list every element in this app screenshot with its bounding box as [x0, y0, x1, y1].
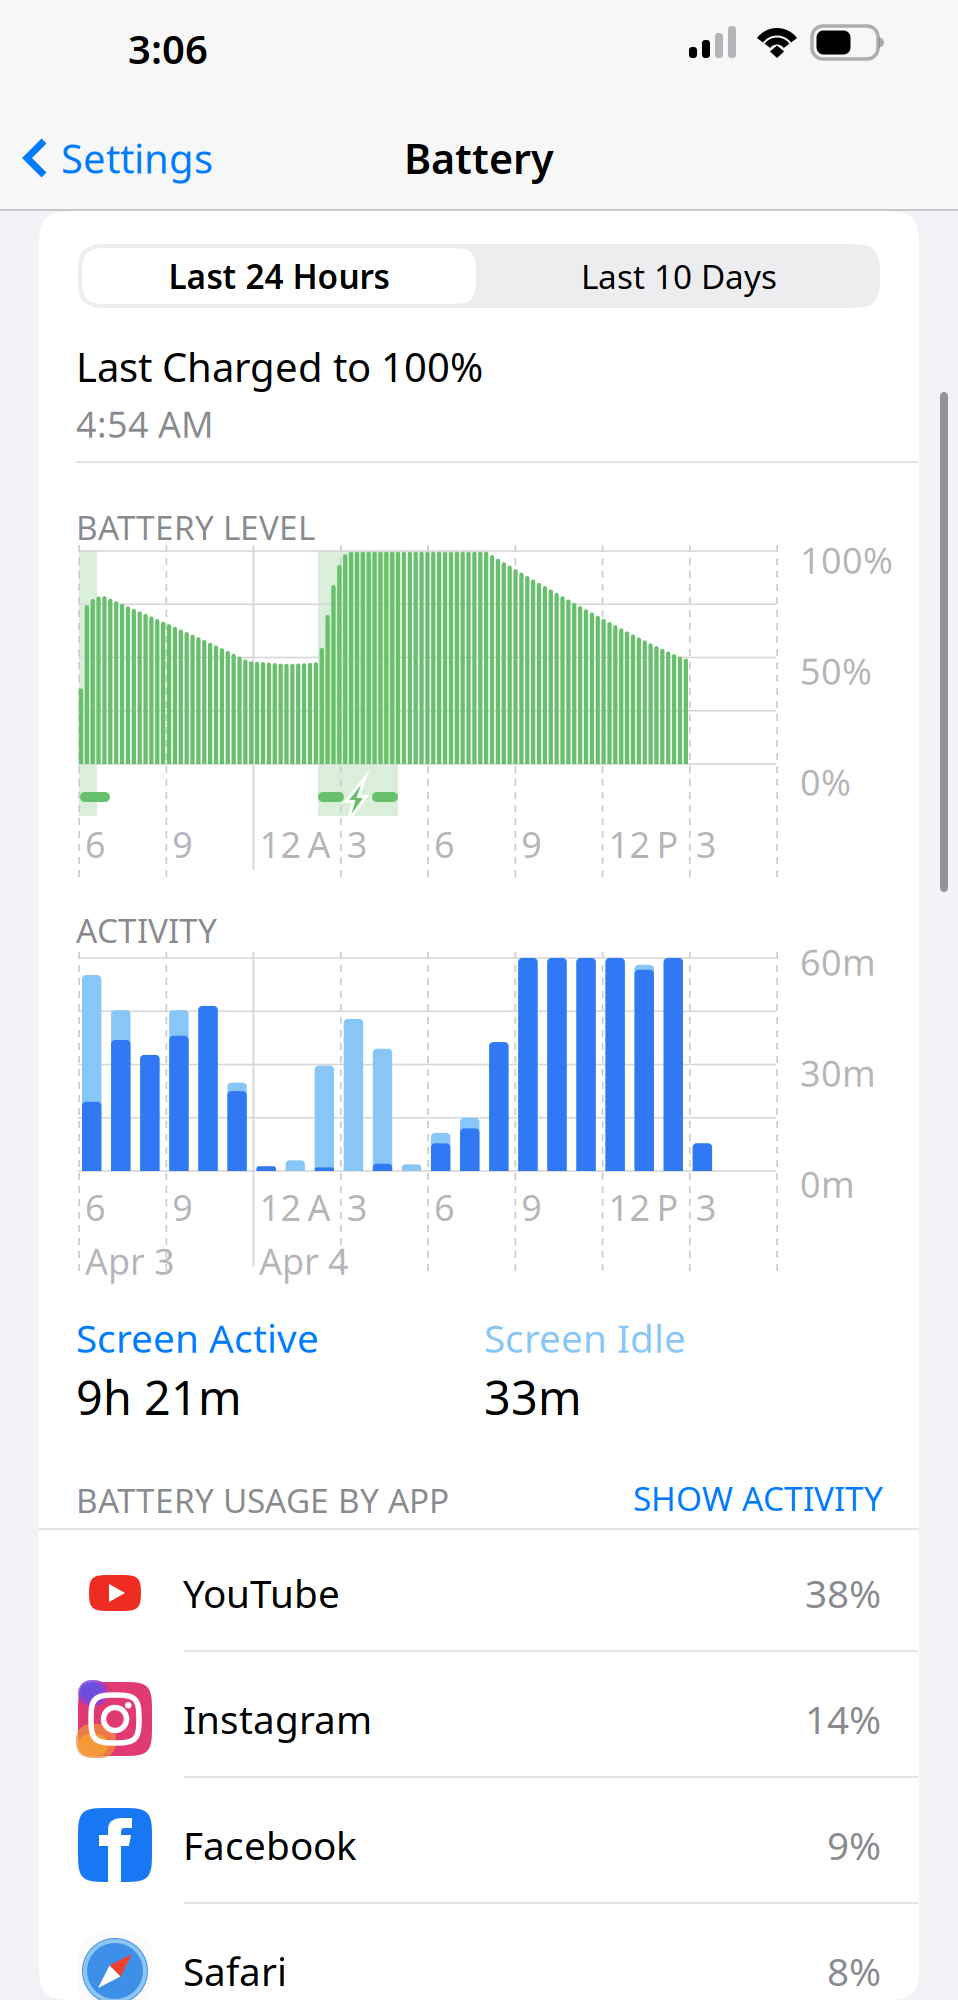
button[interactable]: Last 10 Days	[78, 244, 476, 300]
button[interactable]: Safari	[0, 1908, 958, 2000]
staticText: Apr 4	[259, 1237, 349, 1285]
staticText: Apr 3	[85, 1237, 175, 1285]
button[interactable]: SHOW ACTIVITY	[565, 1478, 883, 1518]
staticText: 9	[521, 820, 542, 868]
staticText: ACTIVITY	[76, 908, 217, 952]
staticText: 8%	[827, 1945, 881, 1997]
staticText: 30m	[800, 1049, 876, 1097]
staticText: Safari	[183, 1945, 287, 1997]
staticText: Battery	[404, 131, 554, 185]
staticText: 12 P	[608, 820, 678, 868]
button[interactable]: Last 24 Hours	[78, 244, 472, 300]
staticText: Last 24 Hours	[168, 254, 389, 298]
staticText: BATTERY USAGE BY APP	[76, 1478, 449, 1522]
button[interactable]: Facebook	[0, 1782, 958, 1908]
staticText: Screen Active	[76, 1312, 319, 1363]
staticText: 12 A	[259, 1183, 330, 1231]
staticText: 9h 21m	[76, 1366, 242, 1428]
staticText: 9%	[827, 1819, 881, 1871]
staticText: 3:06	[128, 22, 208, 75]
staticText: Last Charged to 100%	[76, 340, 483, 393]
staticText: Facebook	[183, 1819, 357, 1871]
staticText: 38%	[805, 1567, 881, 1619]
staticText: 3	[696, 820, 717, 868]
staticText: SHOW ACTIVITY	[633, 1476, 883, 1520]
staticText: 14%	[805, 1693, 881, 1745]
staticText: 12 A	[259, 820, 330, 868]
staticText: 3	[347, 1183, 368, 1231]
staticText: 6	[434, 820, 455, 868]
staticText: 6	[85, 820, 106, 868]
staticText: 6	[434, 1183, 455, 1231]
staticText: 0%	[800, 758, 851, 806]
staticText: 12 P	[608, 1183, 678, 1231]
staticText: 100%	[800, 536, 893, 584]
button[interactable]: YouTube	[0, 1530, 958, 1656]
staticText: YouTube	[183, 1567, 340, 1619]
staticText: 9	[521, 1183, 542, 1231]
staticText: BATTERY LEVEL	[76, 505, 315, 549]
staticText: 0m	[800, 1160, 855, 1208]
staticText: Screen Idle	[484, 1312, 686, 1363]
staticText: 9	[172, 820, 193, 868]
staticText: Last 10 Days	[581, 254, 777, 298]
button[interactable]: Settings	[22, 117, 272, 199]
button[interactable]: Instagram	[0, 1656, 958, 1782]
staticText: 6	[85, 1183, 106, 1231]
staticText: Settings	[61, 131, 213, 184]
staticText: 9	[172, 1183, 193, 1231]
staticText: 33m	[484, 1366, 582, 1428]
staticText: 50%	[800, 647, 872, 695]
staticText: 3	[696, 1183, 717, 1231]
staticText: 60m	[800, 938, 876, 986]
staticText: Instagram	[183, 1693, 372, 1745]
staticText: 4:54 AM	[76, 400, 214, 448]
staticText: 3	[347, 820, 368, 868]
